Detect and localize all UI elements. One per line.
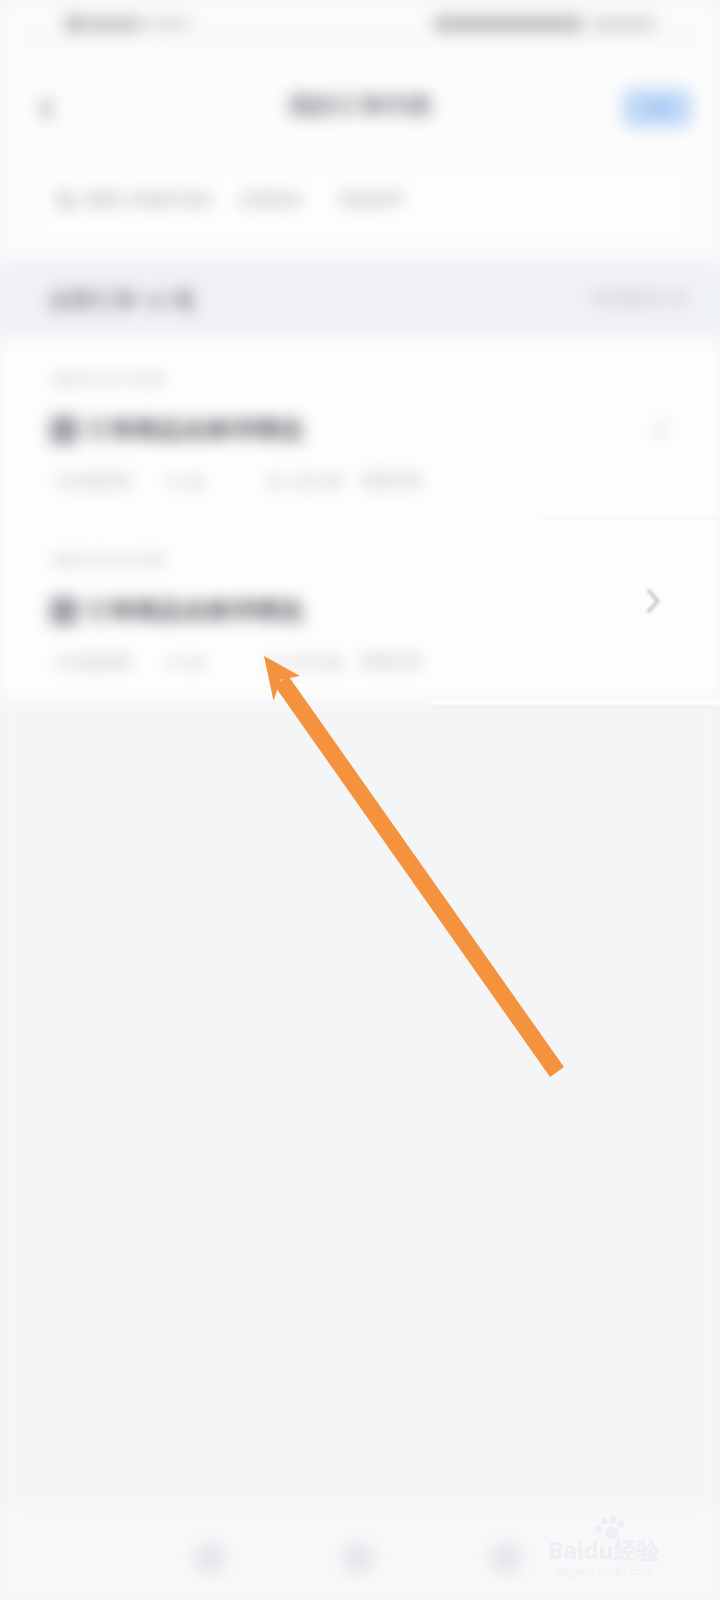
staticText: 全部状态 [239,190,303,210]
staticText: 筛选排序 [339,190,403,210]
button[interactable]: Open order details [630,578,676,624]
button[interactable]: Back [175,1523,245,1593]
staticText: 我的订单列表 [288,91,432,121]
button[interactable]: 2023-10-12 13:05 [0,337,720,518]
staticText: Baidu经验 [548,1534,660,1565]
button[interactable]: 完成 [622,88,692,128]
button[interactable]: 2023-10-12 13:05 [0,518,720,699]
staticText: 订单商品名称详情说 [86,596,302,626]
staticText: 搜索订单编号或名 [85,190,213,210]
staticText: 订单商品名称详情说 [86,415,302,445]
staticText: 全部订单 12 笔 [48,284,195,314]
button[interactable]: 全部状态 [239,190,303,210]
button[interactable]: Home [323,1523,393,1593]
button[interactable]: 搜索订单编号或名 [56,190,213,210]
button[interactable]: Back [24,86,70,132]
staticText: 共 2 件订单 [266,652,343,672]
button[interactable]: Recent apps [471,1523,541,1593]
staticText: 完成 [642,99,672,118]
button[interactable]: 筛选排序 [339,190,403,210]
button[interactable]: 全部订单 12 笔 [0,260,720,337]
